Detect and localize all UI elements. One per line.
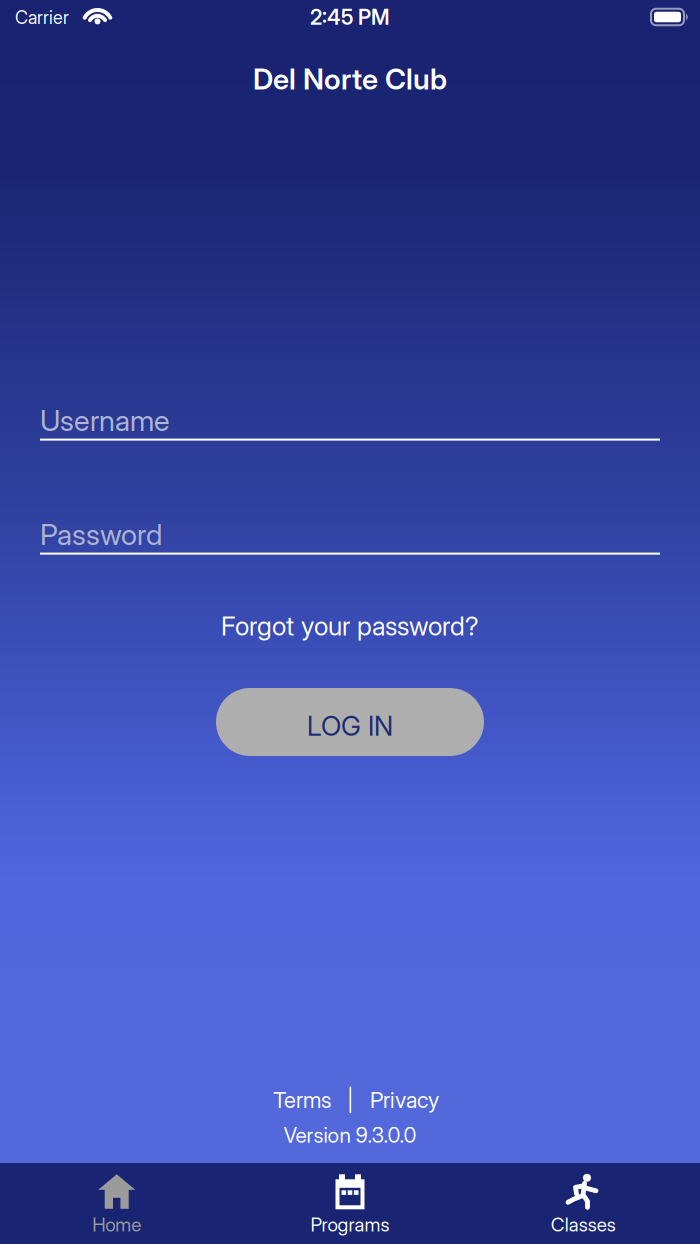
button[interactable]: Classes <box>483 1163 683 1241</box>
button[interactable]: Terms <box>273 1087 331 1113</box>
button[interactable]: Home <box>17 1163 217 1241</box>
staticText: Username <box>40 403 170 438</box>
button[interactable]: Password <box>40 517 660 555</box>
staticText: Terms <box>273 1087 331 1113</box>
staticText: Home <box>92 1213 141 1236</box>
button[interactable]: Programs <box>250 1163 450 1241</box>
staticText: Del Norte Club <box>253 62 447 96</box>
button[interactable]: Privacy <box>370 1087 439 1113</box>
button[interactable]: Username <box>40 403 660 441</box>
staticText: Version 9.3.0.0 <box>283 1123 416 1147</box>
staticText: LOG IN <box>307 710 393 742</box>
staticText: Carrier <box>15 7 69 28</box>
button[interactable]: Forgot your password? <box>221 611 479 641</box>
staticText: Classes <box>551 1213 616 1236</box>
button[interactable]: LOG IN <box>216 688 484 756</box>
staticText: Forgot your password? <box>221 611 479 641</box>
staticText: Password <box>40 517 162 552</box>
staticText: 2:45 PM <box>310 5 390 29</box>
staticText: | <box>347 1087 354 1113</box>
staticText: Programs <box>310 1213 389 1236</box>
staticText: Privacy <box>370 1087 439 1113</box>
